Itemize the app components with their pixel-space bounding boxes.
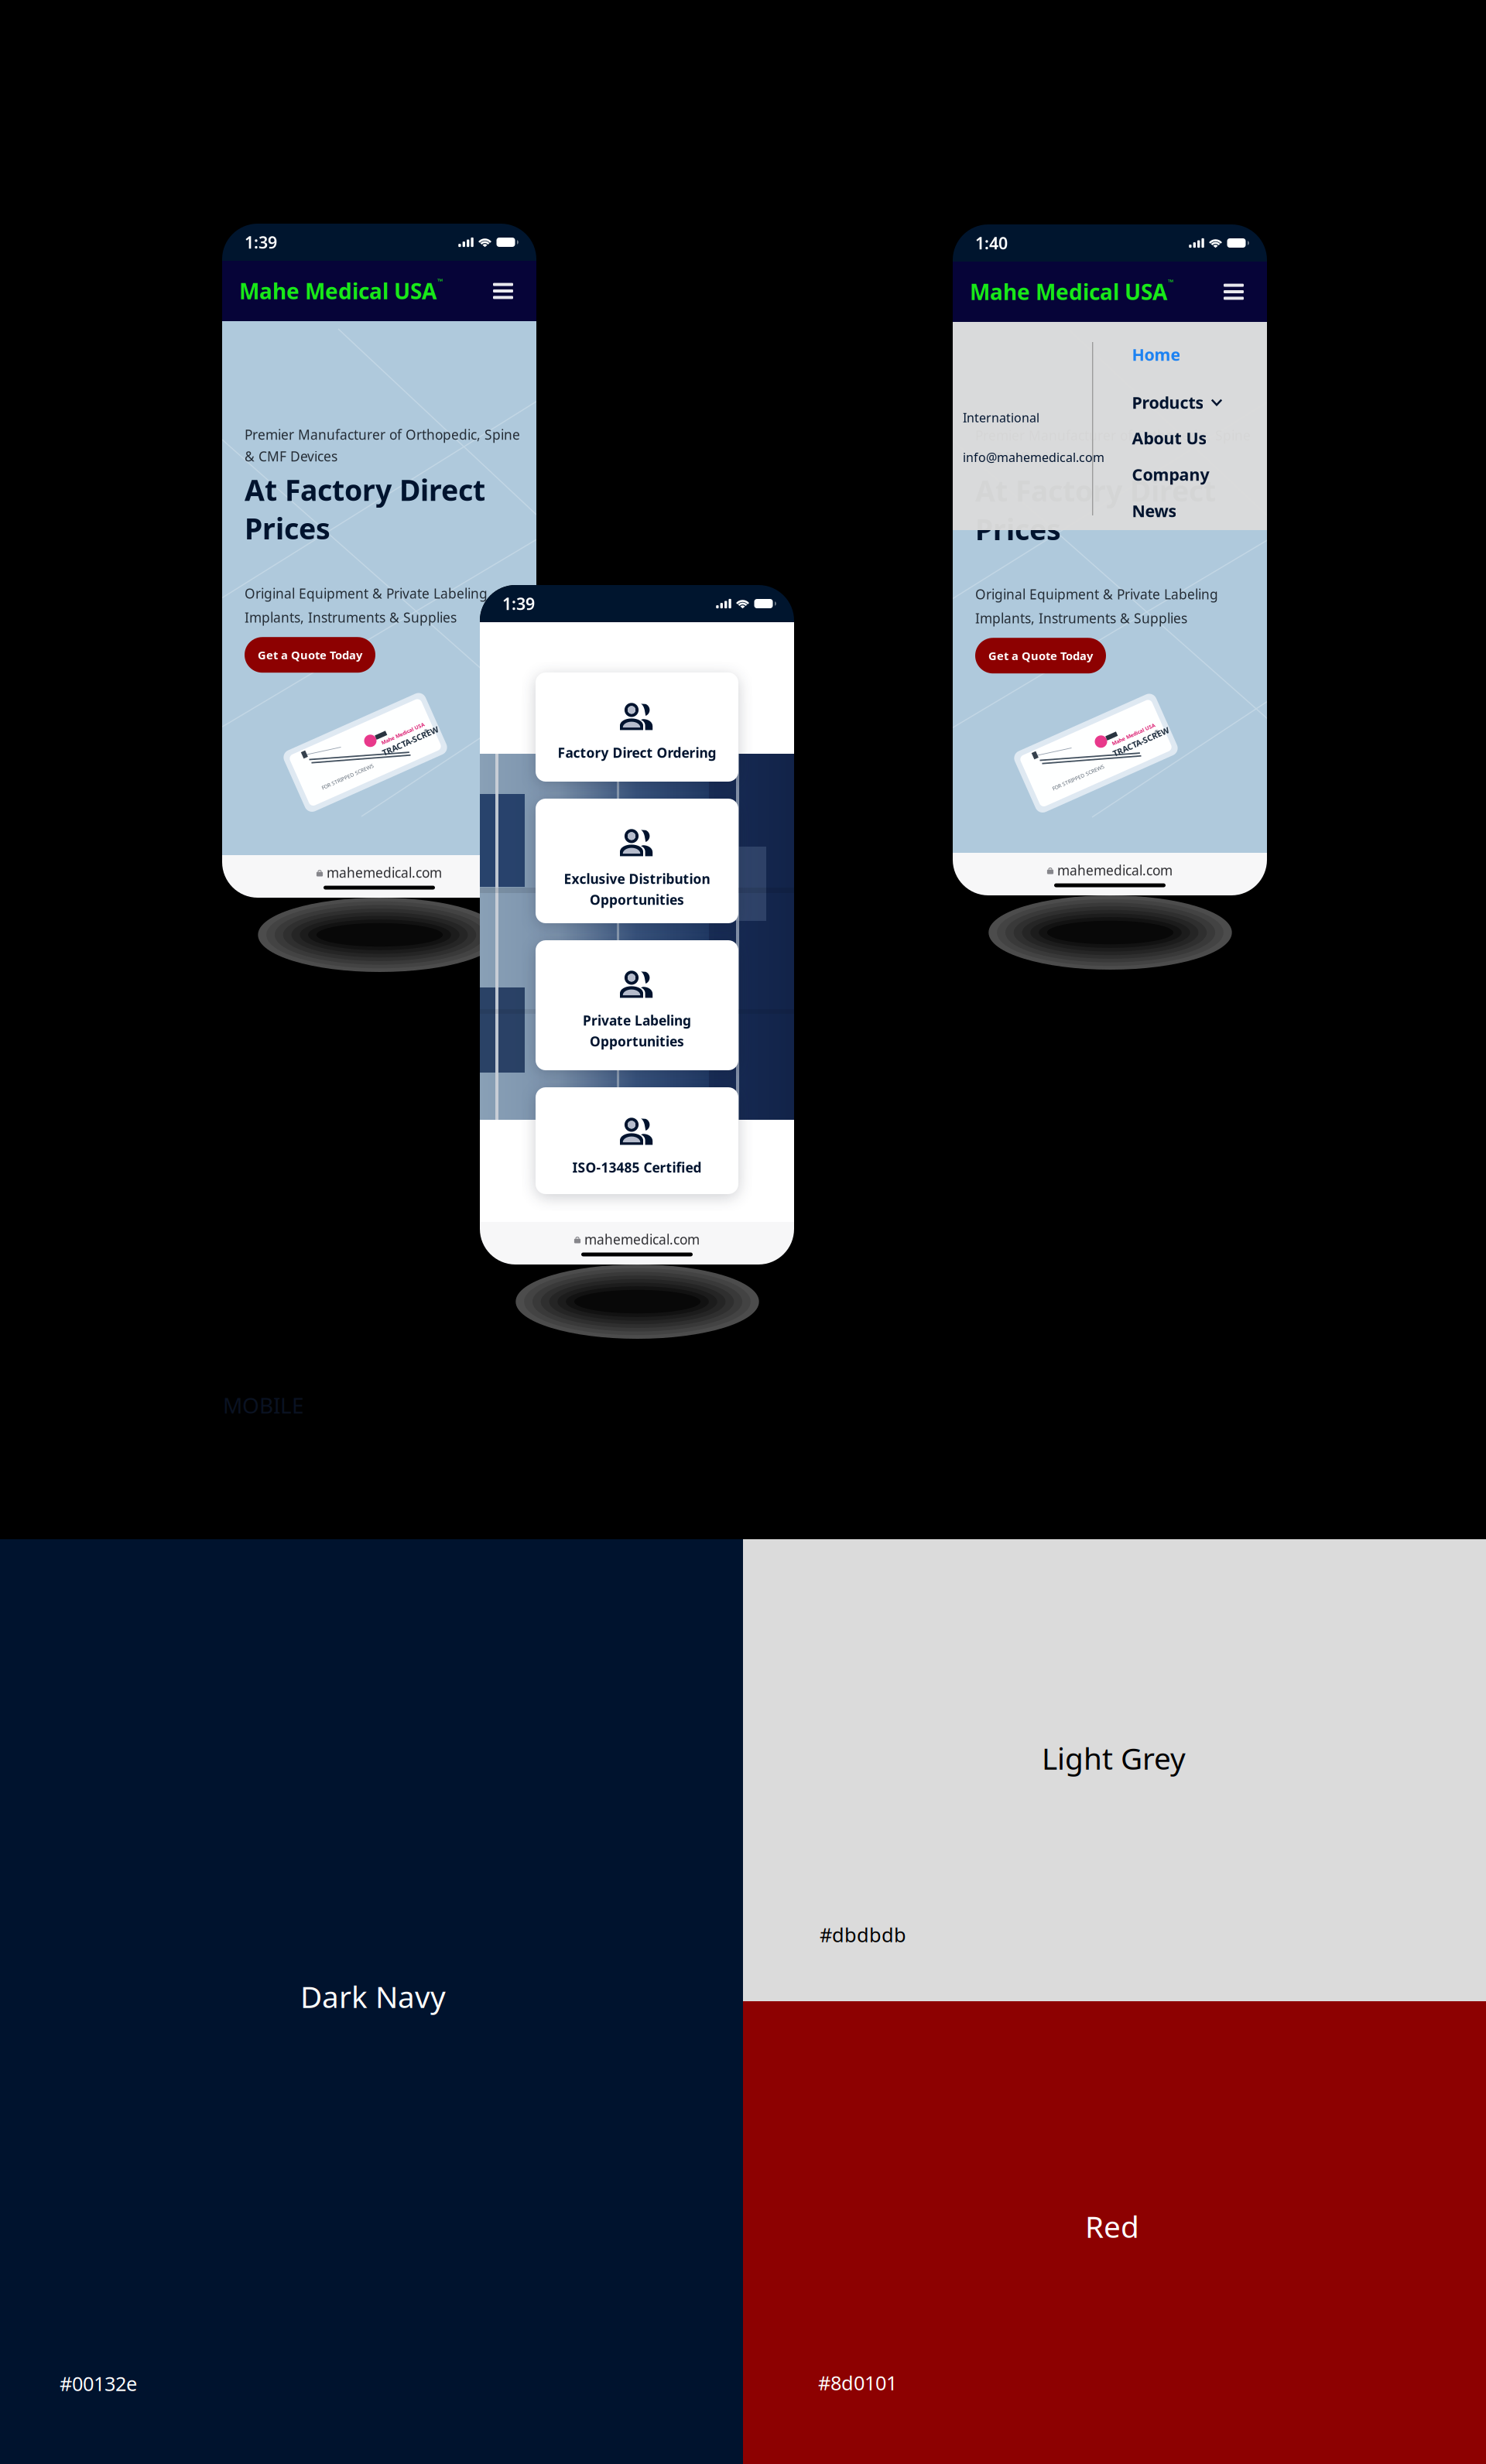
staticText: TRACTA-SCREW	[381, 755, 441, 766]
staticText: Get a Quote Today	[988, 648, 1093, 663]
staticText: mahemedical.com	[584, 1230, 700, 1248]
staticText: News	[1132, 500, 1177, 522]
staticText: Products	[1132, 391, 1204, 413]
staticText: #00132e	[60, 2370, 137, 2396]
staticText: #dbdbdb	[820, 1922, 906, 1948]
staticText: Exclusive Distribution	[564, 870, 710, 888]
staticText: Original Equipment & Private Labeling	[245, 584, 488, 602]
staticText: #8d0101	[818, 2370, 897, 2396]
button[interactable]: News	[1132, 501, 1177, 521]
staticText: Light Grey	[1042, 1738, 1186, 1778]
staticText: Opportunities	[590, 891, 684, 909]
staticText: Prices	[975, 510, 1061, 548]
staticText: Mahe Medical USA	[384, 747, 431, 754]
staticText: Home	[1132, 343, 1181, 365]
button[interactable]: Open menu	[1221, 278, 1247, 306]
staticText: FOR STRIPPED SCREWS	[311, 764, 368, 771]
staticText: ™	[1168, 277, 1173, 287]
staticText: Original Equipment & Private Labeling	[975, 585, 1218, 603]
staticText: Opportunities	[590, 1032, 684, 1050]
staticText: Company	[1132, 463, 1209, 485]
button[interactable]: Get a Quote Today	[245, 637, 375, 673]
staticText: 1:40	[975, 232, 1008, 254]
staticText: FOR STRIPPED SCREWS	[1042, 765, 1098, 772]
staticText: MOBILE	[223, 1391, 304, 1419]
staticText: & CMF Devices	[975, 448, 1068, 466]
staticText: Mahe Medical USA	[1114, 748, 1162, 755]
button[interactable]: Mahe Medical USA	[239, 279, 443, 303]
staticText: Mahe Medical USA	[970, 277, 1167, 306]
staticText: 1:39	[502, 593, 535, 615]
staticText: Premier Manufacturer of Orthopedic, Spin…	[975, 426, 1251, 444]
button[interactable]: Get a Quote Today	[975, 638, 1106, 673]
staticText: mahemedical.com	[327, 864, 442, 881]
staticText: mahemedical.com	[1057, 861, 1173, 879]
button[interactable]: Products	[1132, 392, 1222, 412]
staticText: Dark Navy	[300, 1976, 446, 2016]
button[interactable]: ISO-13485 Certified	[536, 1087, 738, 1194]
staticText: Red	[1085, 2206, 1139, 2246]
button[interactable]: Mahe Medical USA	[970, 279, 1173, 304]
staticText: At Factory Direct	[245, 471, 485, 509]
staticText: & CMF Devices	[245, 447, 337, 465]
staticText: ™	[437, 277, 443, 286]
button[interactable]: Factory Direct Ordering	[536, 672, 738, 782]
staticText: About Us	[1132, 427, 1207, 449]
staticText: Mahe Medical USA	[239, 277, 437, 305]
staticText: Implants, Instruments & Supplies	[975, 609, 1187, 627]
staticText: Prices	[245, 509, 330, 547]
button[interactable]: Company	[1132, 464, 1209, 484]
button[interactable]: Home	[1132, 344, 1181, 364]
staticText: Private Labeling	[583, 1011, 691, 1029]
staticText: Premier Manufacturer of Orthopedic, Spin…	[245, 426, 520, 443]
button[interactable]: mahemedical.com	[574, 1232, 700, 1246]
button[interactable]: Exclusive Distribution	[536, 799, 738, 923]
staticText: info@mahemedical.com	[963, 449, 1104, 465]
staticText: ISO-13485 Certified	[572, 1158, 702, 1176]
button[interactable]: Private Labeling	[536, 940, 738, 1070]
staticText: Get a Quote Today	[258, 647, 362, 662]
staticText: 1:39	[245, 231, 277, 253]
button[interactable]: mahemedical.com	[1047, 863, 1173, 877]
staticText: TRACTA-SCREW	[1111, 755, 1172, 766]
button[interactable]: mahemedical.com	[316, 866, 442, 880]
staticText: ®	[427, 754, 432, 761]
staticText: ®	[1158, 755, 1162, 762]
staticText: Implants, Instruments & Supplies	[245, 608, 457, 626]
staticText: International	[963, 409, 1039, 426]
button[interactable]: Open menu	[490, 277, 516, 305]
staticText: At Factory Direct	[975, 471, 1216, 510]
button[interactable]: About Us	[1132, 428, 1207, 448]
staticText: Factory Direct Ordering	[558, 744, 716, 761]
